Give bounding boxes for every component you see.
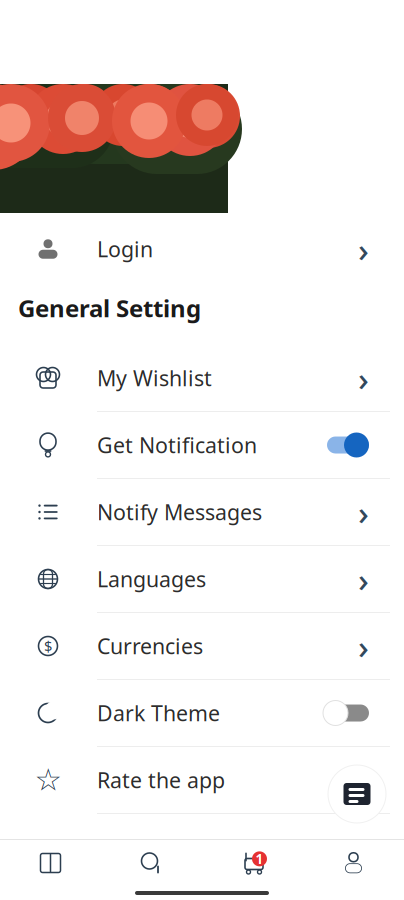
staticText: 1 xyxy=(255,850,263,868)
staticText: ☆ xyxy=(34,763,61,797)
button[interactable]: $ xyxy=(0,613,404,680)
button[interactable]: ☆ xyxy=(0,747,404,814)
staticText: Settings xyxy=(0,222,76,277)
staticText: Notify Messages xyxy=(97,498,262,526)
staticText: Rate the app xyxy=(97,766,225,794)
button[interactable]: Get Notification xyxy=(0,412,404,479)
staticText: › xyxy=(358,356,369,400)
staticText: Dark Theme xyxy=(97,699,220,727)
staticText: › xyxy=(358,227,369,271)
button[interactable]: Dark Theme xyxy=(0,680,404,747)
button[interactable]: Profile xyxy=(303,840,404,886)
button[interactable]: Catalog xyxy=(0,840,101,886)
button[interactable]: Login xyxy=(0,213,404,285)
staticText: Currencies xyxy=(97,632,203,660)
staticText: My Wishlist xyxy=(97,364,212,392)
staticText: › xyxy=(358,557,369,601)
staticText: › xyxy=(358,490,369,534)
button[interactable]: My Wishlist xyxy=(0,345,404,412)
staticText: › xyxy=(358,758,369,802)
button[interactable]: Chat support xyxy=(328,765,386,823)
staticText: Get Notification xyxy=(97,431,257,459)
staticText: General Setting xyxy=(18,292,201,324)
button[interactable]: Cart, 1 item xyxy=(202,840,303,886)
staticText: $ xyxy=(44,636,52,656)
staticText: Languages xyxy=(97,565,206,593)
button[interactable]: Languages xyxy=(0,546,404,613)
staticText: Login xyxy=(97,235,153,263)
button[interactable]: Search xyxy=(101,840,202,886)
button[interactable]: Notify Messages xyxy=(0,479,404,546)
staticText: › xyxy=(358,624,369,668)
